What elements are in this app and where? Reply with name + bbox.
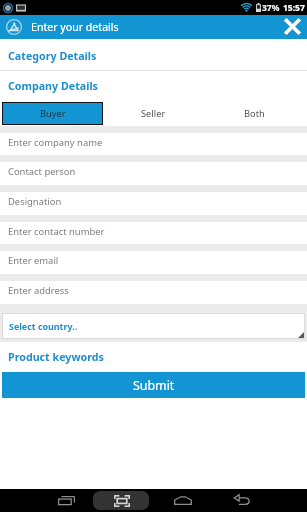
button[interactable]: Select country.. <box>2 313 305 339</box>
staticText: Buyer <box>40 107 66 120</box>
button[interactable]: Buyer <box>2 102 103 125</box>
button[interactable]: Enter contact number <box>0 215 307 245</box>
button[interactable]: Both <box>204 102 305 125</box>
button[interactable]: Seller <box>103 102 204 125</box>
staticText: Enter company name <box>8 136 103 149</box>
staticText: Enter contact number <box>8 225 105 238</box>
staticText: 15:57 <box>283 2 305 14</box>
button[interactable]: Recents <box>49 489 83 512</box>
staticText: Enter address <box>8 284 69 297</box>
staticText: Select country.. <box>9 320 78 332</box>
button[interactable]: Contact person <box>0 155 307 185</box>
button[interactable]: Enter email <box>0 244 307 274</box>
staticText: Seller <box>141 107 166 120</box>
staticText: 37% <box>262 2 280 14</box>
staticText: Category Details <box>8 49 97 64</box>
button[interactable]: Back <box>225 489 259 512</box>
button[interactable]: Designation <box>0 185 307 215</box>
button[interactable]: Enter company name <box>0 126 307 156</box>
staticText: Company Details <box>8 79 98 94</box>
staticText: Product keywords <box>8 350 104 365</box>
staticText: Enter your details <box>31 20 119 34</box>
staticText: Both <box>244 107 265 120</box>
button[interactable]: Submit <box>2 372 305 398</box>
staticText: Submit <box>133 377 175 394</box>
staticText: Designation <box>8 195 62 208</box>
button[interactable]: Home <box>166 489 200 512</box>
button[interactable]: Screenshot <box>105 489 139 512</box>
staticText: Contact person <box>8 165 76 178</box>
button[interactable]: Close <box>277 15 307 39</box>
button[interactable]: Enter address <box>0 274 307 304</box>
staticText: Enter email <box>8 254 59 267</box>
